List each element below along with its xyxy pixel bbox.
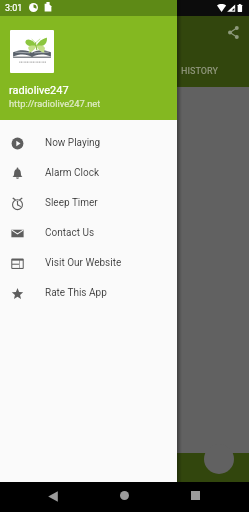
button[interactable]: Sleep Timer <box>0 188 177 218</box>
staticText: Now Playing <box>45 137 101 149</box>
button[interactable]: Visit Our Website <box>0 248 177 278</box>
staticText: Alarm Clock <box>45 167 99 179</box>
button[interactable]: Alarm Clock <box>0 158 177 188</box>
button[interactable]: Home <box>112 485 136 509</box>
staticText: radiolive247 <box>9 84 69 97</box>
staticText: 3:01 <box>5 3 23 14</box>
button[interactable]: Now Playing <box>0 128 177 158</box>
button[interactable]: Contact Us <box>0 218 177 248</box>
staticText: Contact Us <box>45 227 95 239</box>
staticText: HISTORY <box>181 66 218 77</box>
button[interactable]: Play <box>204 444 234 474</box>
button[interactable]: Recents <box>183 485 207 509</box>
button[interactable]: Rate This App <box>0 278 177 308</box>
staticText: Visit Our Website <box>45 257 122 269</box>
staticText: Sleep Timer <box>45 197 98 209</box>
staticText: Rate This App <box>45 287 107 299</box>
button[interactable]: Share <box>224 24 243 43</box>
staticText: http://radiolive247.net <box>9 98 101 109</box>
button[interactable]: Back <box>41 485 65 509</box>
